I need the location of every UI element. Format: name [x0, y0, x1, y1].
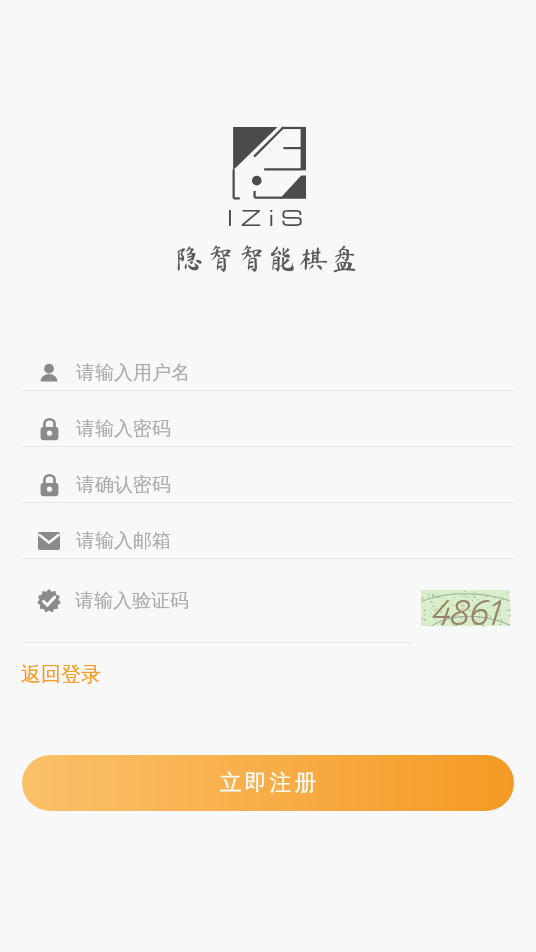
staticText: 请输入邮箱: [76, 529, 171, 553]
staticText: 返回登录: [21, 662, 101, 687]
staticText: 4861: [431, 590, 501, 626]
button[interactable]: Refresh verification code: [421, 590, 510, 626]
staticText: 请输入验证码: [75, 589, 189, 613]
button[interactable]: 请确认密码: [0, 447, 536, 503]
button[interactable]: 请输入密码: [0, 391, 536, 447]
staticText: 请输入密码: [76, 417, 171, 441]
staticText: 隐智智能棋盘: [175, 243, 362, 272]
button[interactable]: 请输入验证码: [37, 559, 421, 642]
button[interactable]: 立即注册: [22, 755, 514, 811]
staticText: 请输入用户名: [76, 361, 190, 385]
staticText: 立即注册: [218, 769, 318, 797]
staticText: 请确认密码: [76, 473, 171, 497]
button[interactable]: 请输入用户名: [0, 335, 536, 391]
staticText: IZiS: [227, 202, 311, 232]
button[interactable]: 返回登录: [20, 659, 102, 690]
button[interactable]: 请输入邮箱: [0, 503, 536, 559]
